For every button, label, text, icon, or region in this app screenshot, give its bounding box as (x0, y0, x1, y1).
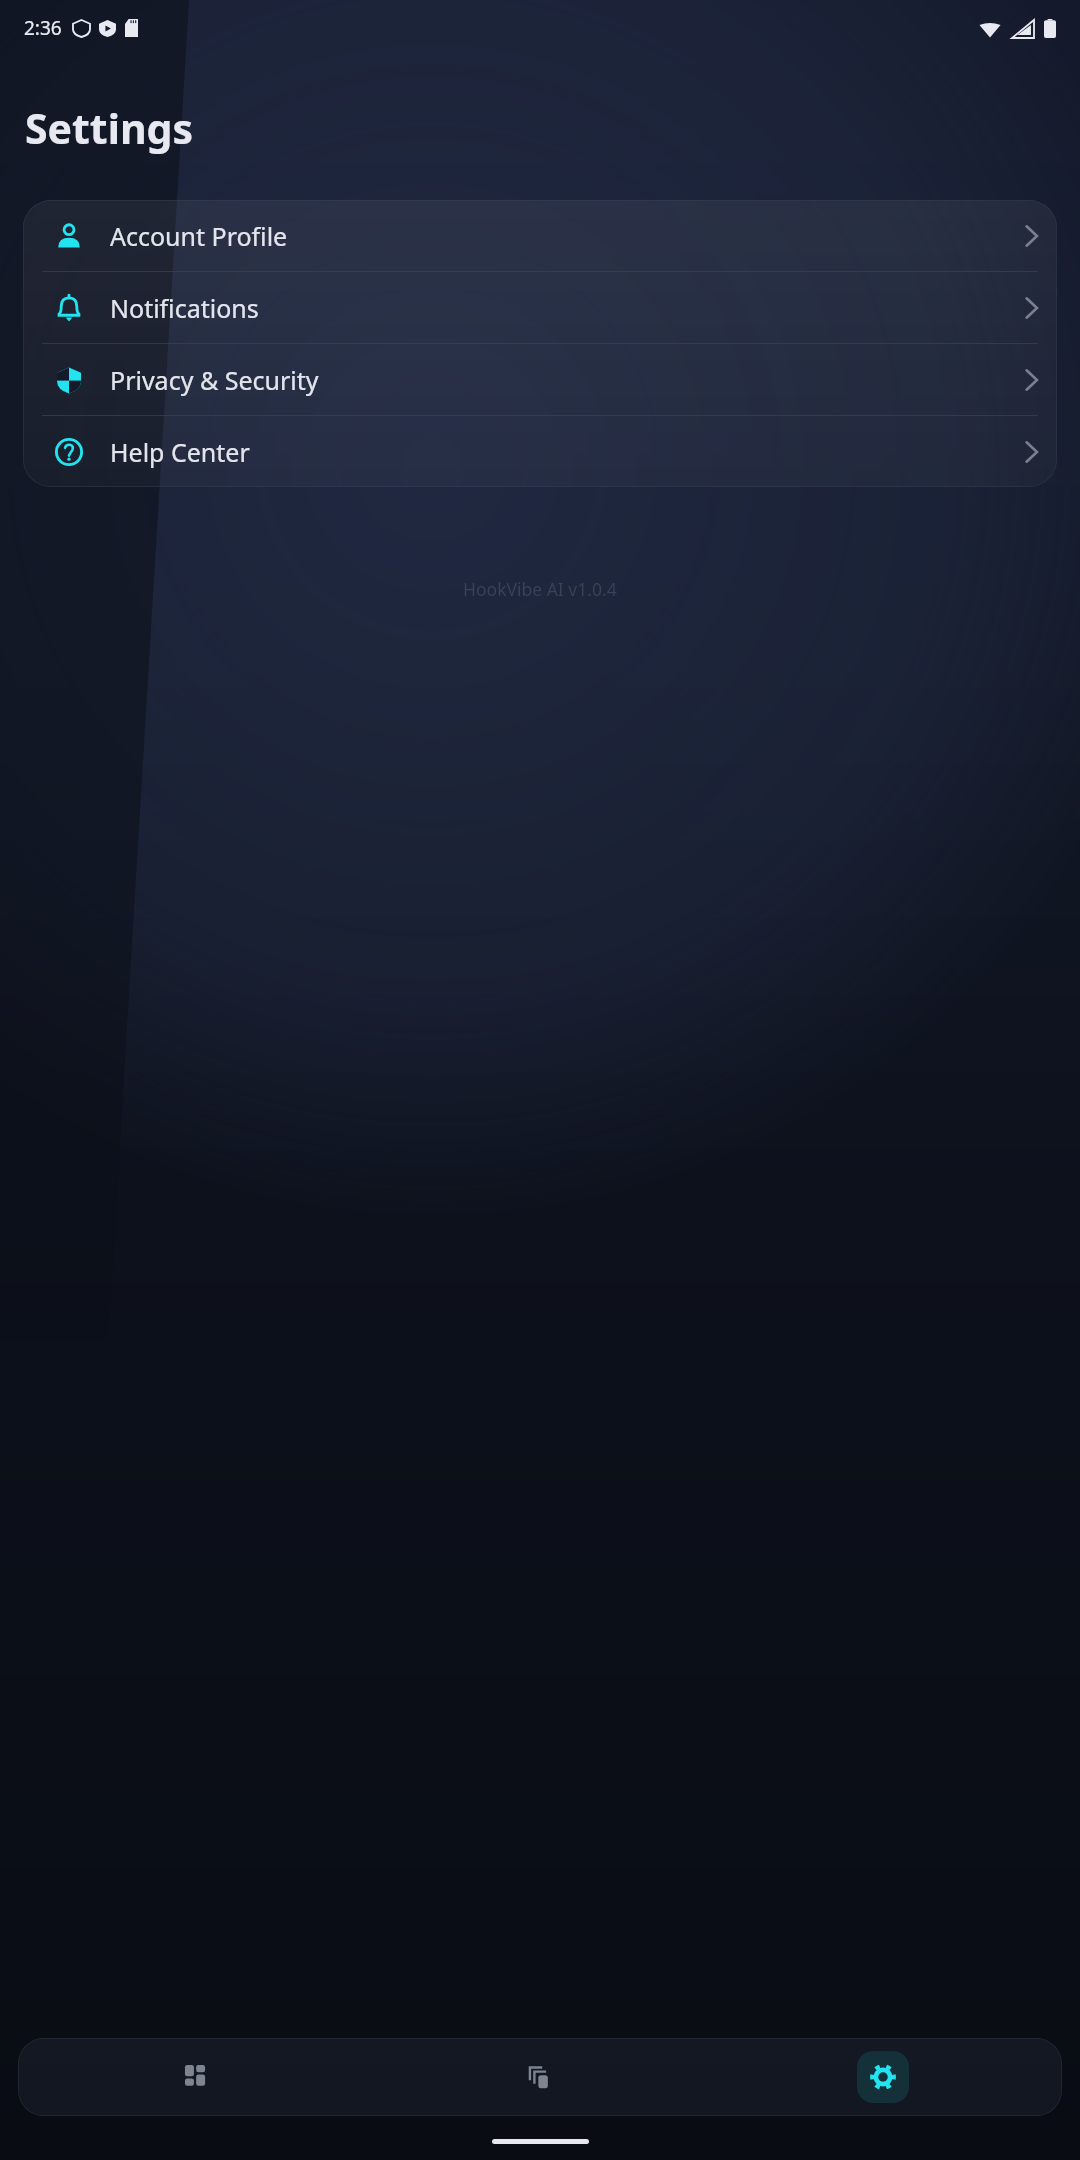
staticText: Settings (25, 100, 194, 156)
staticText: 2:36 (24, 15, 62, 41)
staticText: Privacy & Security (110, 363, 1025, 397)
button[interactable]: Privacy & Security (23, 344, 1057, 415)
staticText: Help Center (110, 435, 1025, 469)
staticText: HookVibe AI v1.0.4 (463, 577, 617, 601)
button[interactable]: Notifications (23, 272, 1057, 343)
button[interactable]: Account Profile (23, 200, 1057, 271)
button[interactable]: Settings (711, 2038, 1054, 2116)
button[interactable]: Help Center (23, 416, 1057, 487)
button[interactable]: Library (368, 2038, 711, 2116)
button[interactable]: Dashboard (26, 2038, 368, 2116)
staticText: Account Profile (110, 219, 1025, 253)
staticText: Notifications (110, 291, 1025, 325)
